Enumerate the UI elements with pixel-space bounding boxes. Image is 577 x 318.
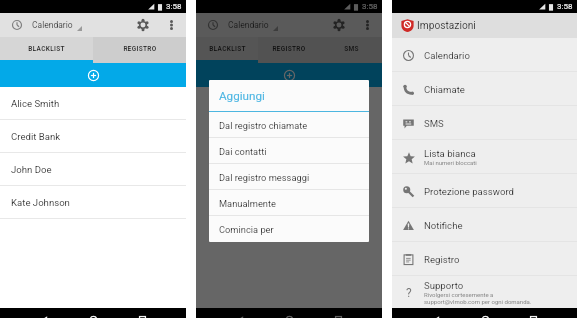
- button[interactable]: BLACKLIST: [0, 37, 93, 60]
- staticText: SMS: [424, 118, 444, 129]
- button[interactable]: Notifiche: [392, 208, 577, 242]
- staticText: ?: [406, 286, 412, 299]
- staticText: 3:58: [557, 2, 573, 11]
- button[interactable]: More options: [161, 15, 181, 35]
- button[interactable]: SMS: [320, 37, 382, 60]
- button[interactable]: Home: [479, 314, 491, 318]
- staticText: Registro: [424, 254, 460, 265]
- button[interactable]: Add: [196, 63, 382, 87]
- staticText: BLACKLIST: [28, 45, 65, 53]
- staticText: BLACKLIST: [209, 45, 246, 53]
- button[interactable]: REGISTRO: [93, 37, 186, 60]
- button[interactable]: ?: [392, 276, 577, 308]
- staticText: John Doe: [11, 164, 52, 175]
- staticText: SMS: [344, 45, 359, 53]
- button[interactable]: REGISTRO: [258, 37, 320, 60]
- button[interactable]: Credit Bank: [0, 120, 186, 153]
- button[interactable]: Protezione password: [392, 174, 577, 208]
- button[interactable]: Settings: [328, 14, 350, 36]
- staticText: Chiamate: [424, 84, 465, 95]
- staticText: Credit Bank: [11, 131, 61, 142]
- staticText: Dal registro messaggi: [219, 172, 310, 183]
- staticText: Lista bianca: [424, 148, 476, 159]
- button[interactable]: Recents: [332, 314, 344, 318]
- button[interactable]: Recents: [527, 314, 539, 318]
- button[interactable]: John Doe: [0, 153, 186, 186]
- button[interactable]: Home: [283, 314, 295, 318]
- button[interactable]: Add: [0, 63, 186, 87]
- button[interactable]: Back: [234, 314, 246, 318]
- staticText: Mai numeri bloccati: [424, 159, 477, 166]
- button[interactable]: SMS: [392, 106, 577, 140]
- staticText: Calendario: [424, 50, 470, 61]
- staticText: Impostazioni: [417, 20, 476, 32]
- button[interactable]: Comincia per: [209, 216, 369, 242]
- button[interactable]: Impostazioni: [392, 13, 577, 38]
- staticText: Rivolgersi cortesemente a: [424, 291, 494, 298]
- staticText: Protezione password: [424, 186, 514, 197]
- button[interactable]: More options: [357, 15, 377, 35]
- staticText: Aggiungi: [219, 89, 265, 103]
- button[interactable]: Calendario: [392, 38, 577, 72]
- button[interactable]: Dai contatti: [209, 138, 369, 164]
- button[interactable]: Registro: [392, 242, 577, 276]
- staticText: Dal registro chiamate: [219, 120, 308, 131]
- button[interactable]: Back: [38, 314, 50, 318]
- button[interactable]: Chiamate: [392, 72, 577, 106]
- staticText: Calendario: [228, 20, 269, 30]
- staticText: Calendario: [32, 20, 73, 30]
- button[interactable]: Back: [430, 314, 442, 318]
- staticText: REGISTRO: [123, 45, 157, 53]
- button[interactable]: Settings: [132, 14, 154, 36]
- button[interactable]: Kate Johnson: [0, 186, 186, 219]
- staticText: Manualmente: [219, 198, 276, 209]
- button[interactable]: BLACKLIST: [196, 37, 258, 60]
- button[interactable]: Manualmente: [209, 190, 369, 216]
- staticText: 3:58: [166, 2, 182, 11]
- button[interactable]: Home: [87, 314, 99, 318]
- button[interactable]: Dal registro chiamate: [209, 112, 369, 138]
- button[interactable]: Dal registro messaggi: [209, 164, 369, 190]
- staticText: Supporto: [424, 280, 464, 291]
- staticText: Notifiche: [424, 220, 463, 231]
- staticText: Kate Johnson: [11, 197, 70, 208]
- button[interactable]: Alice Smith: [0, 87, 186, 120]
- staticText: 3:58: [362, 2, 378, 11]
- staticText: support@vlmob.com per ogni domanda.: [424, 298, 532, 305]
- staticText: Alice Smith: [11, 98, 60, 109]
- button[interactable]: Recents: [136, 314, 148, 318]
- button[interactable]: Lista bianca: [392, 140, 577, 174]
- staticText: Comincia per: [219, 224, 274, 235]
- staticText: REGISTRO: [272, 45, 306, 53]
- staticText: Dai contatti: [219, 146, 267, 157]
